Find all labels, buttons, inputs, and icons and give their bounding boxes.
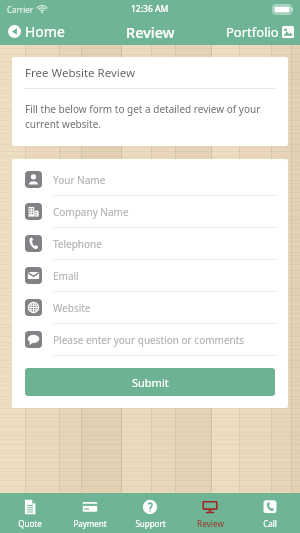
staticText: Review: [197, 518, 224, 529]
button[interactable]: Telephone: [12, 228, 288, 260]
staticText: Home: [25, 22, 65, 41]
staticText: Website: [53, 301, 91, 315]
other: Call: [261, 498, 279, 516]
staticText: Support: [135, 518, 166, 529]
staticText: Fill the below form to get a detailed re…: [25, 102, 272, 131]
button[interactable]: Call: [240, 493, 300, 533]
button[interactable]: Website: [12, 292, 288, 324]
button[interactable]: Review: [180, 493, 240, 533]
staticText: Email: [53, 269, 79, 283]
button[interactable]: Payment: [60, 493, 120, 533]
button[interactable]: Your Name: [12, 164, 288, 196]
staticText: Free Website Review: [25, 65, 136, 81]
staticText: Your Name: [53, 173, 106, 187]
staticText: 12:36 AM: [131, 3, 169, 15]
button[interactable]: Home: [0, 18, 73, 45]
button[interactable]: Company Name: [12, 196, 288, 228]
button[interactable]: Submit: [25, 368, 275, 396]
staticText: Call: [263, 518, 277, 529]
button[interactable]: Support: [120, 493, 180, 533]
other: Payment: [81, 498, 99, 516]
staticText: Payment: [73, 518, 107, 529]
other: Support: [141, 498, 159, 516]
button[interactable]: Email: [12, 260, 288, 292]
staticText: Submit: [132, 375, 169, 390]
other: Review: [201, 498, 219, 516]
staticText: Telephone: [53, 237, 102, 251]
button[interactable]: Please enter your question or comments: [12, 324, 288, 356]
button[interactable]: Portfolio: [218, 19, 300, 45]
staticText: Portfolio: [226, 23, 279, 41]
staticText: Review: [126, 22, 175, 42]
other: Quote: [21, 498, 39, 516]
button[interactable]: Quote: [0, 493, 60, 533]
staticText: Carrier: [7, 4, 34, 15]
staticText: Company Name: [53, 205, 129, 219]
staticText: Quote: [18, 518, 42, 529]
staticText: Please enter your question or comments: [53, 333, 245, 347]
